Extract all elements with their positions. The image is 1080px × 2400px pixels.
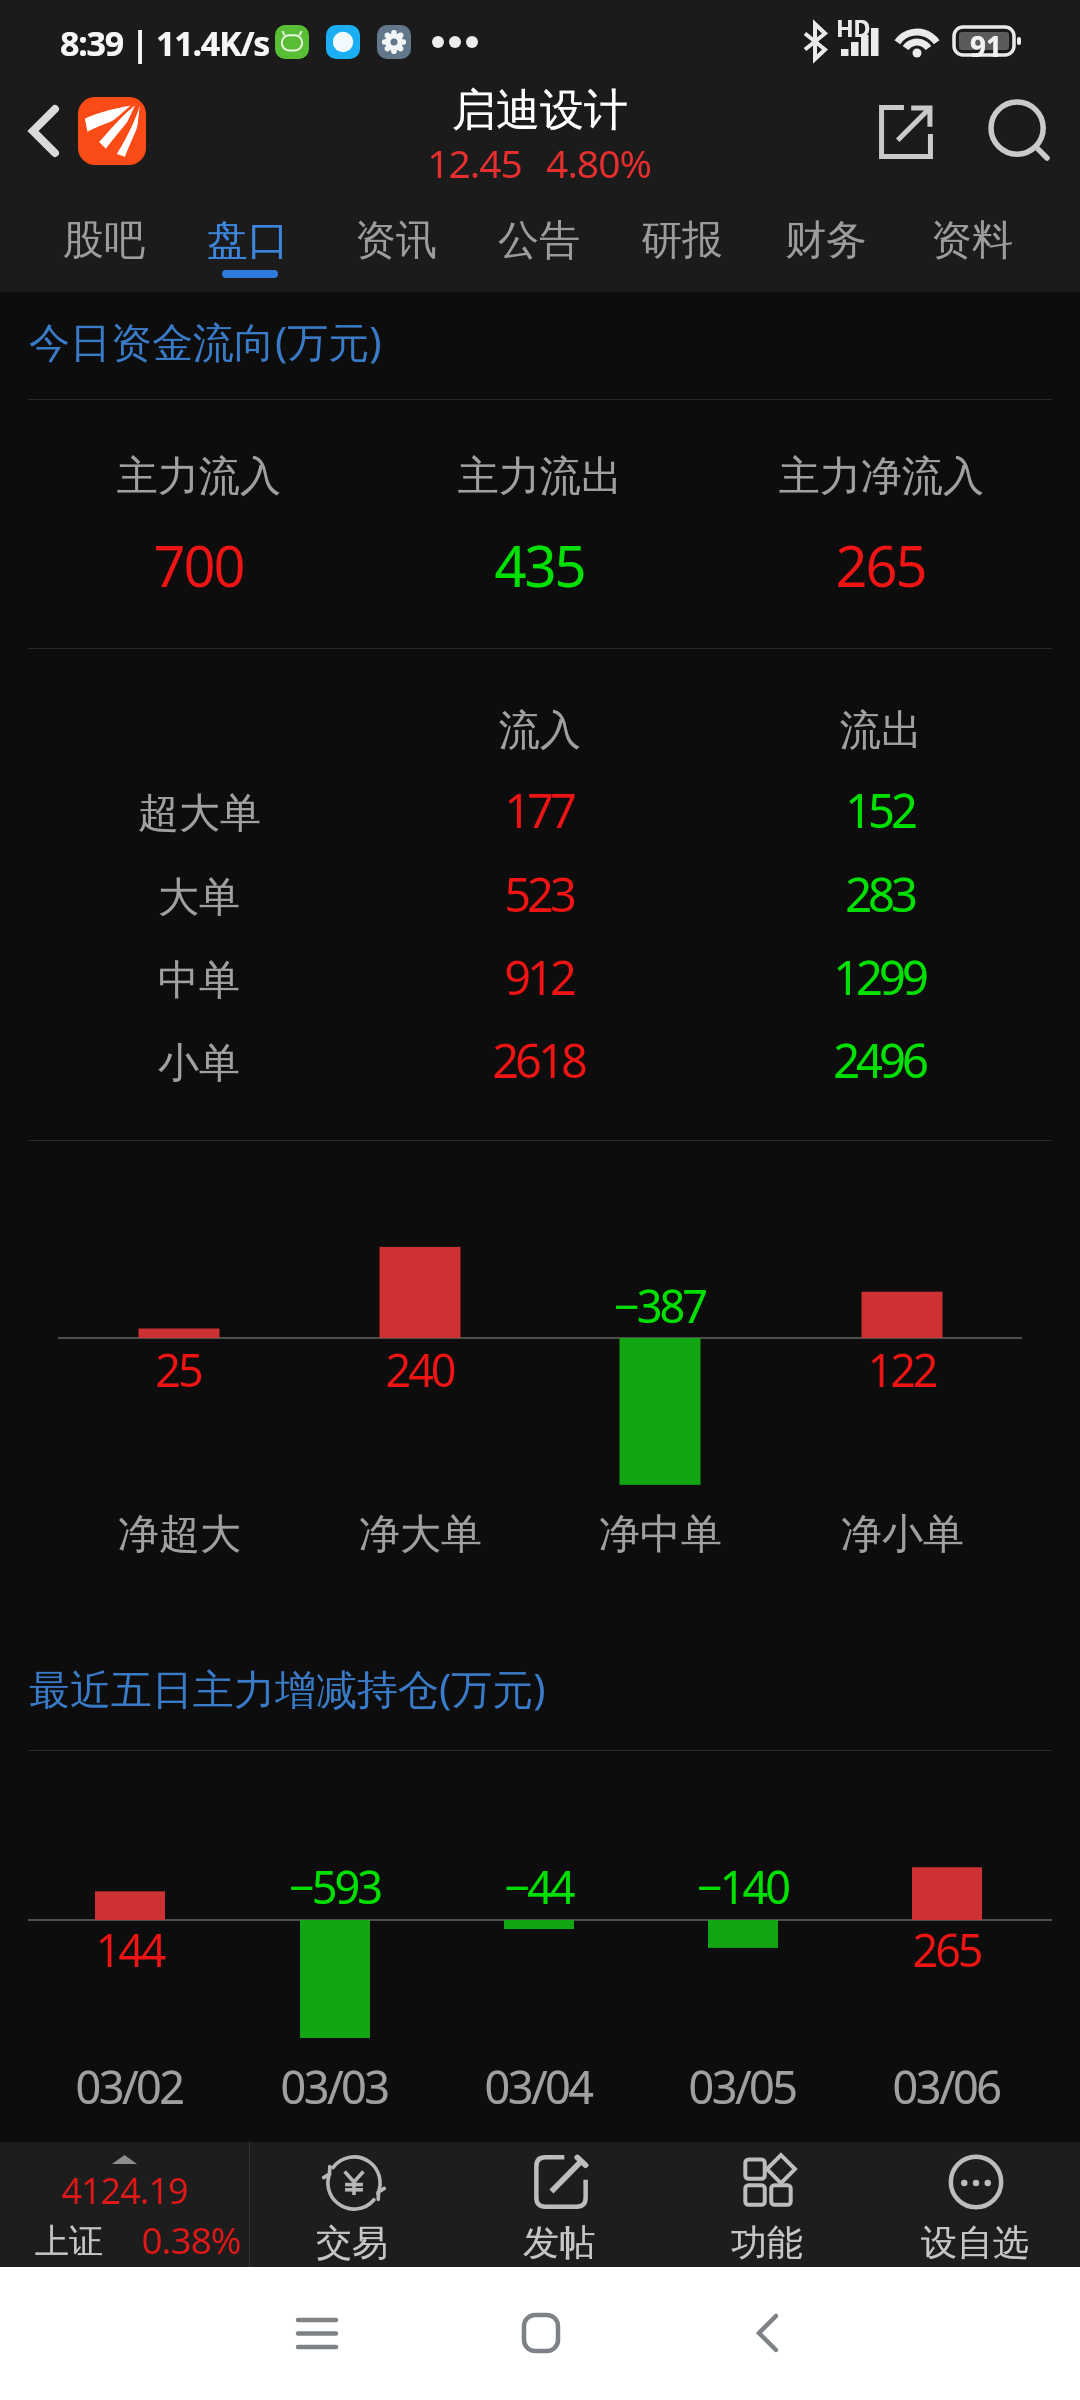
staticText: 股吧 <box>63 215 145 267</box>
button[interactable]: Search <box>970 81 1066 177</box>
button[interactable] <box>926 191 1080 292</box>
staticText: 流出 <box>840 705 922 757</box>
staticText: 研报 <box>641 215 723 267</box>
staticText: −593 <box>289 1856 380 1917</box>
staticText: 265 <box>835 527 926 603</box>
button[interactable] <box>310 191 464 292</box>
staticText: 122 <box>867 1339 936 1400</box>
staticText: 净大单 <box>359 1509 482 1561</box>
staticText: 财务 <box>785 215 867 267</box>
button[interactable] <box>0 2142 249 2268</box>
staticText: 资料 <box>931 215 1013 267</box>
staticText: 152 <box>845 778 914 842</box>
staticText: 资讯 <box>355 215 437 267</box>
staticText: 最近五日主力增减持仓(万元) <box>29 1660 546 1716</box>
staticText: 4124.19 <box>61 2166 188 2215</box>
button[interactable]: Back <box>707 2273 827 2393</box>
staticText: 03/04 <box>484 2056 592 2117</box>
staticText: 912 <box>504 945 573 1009</box>
staticText: 启迪设计 <box>452 83 628 138</box>
staticText: 283 <box>845 862 914 926</box>
staticText: −44 <box>504 1856 573 1917</box>
staticText: 超大单 <box>138 788 261 840</box>
staticText: 700 <box>153 527 244 603</box>
staticText: 主力净流入 <box>779 451 984 503</box>
staticText: 发帖 <box>523 2220 595 2265</box>
staticText: 91 <box>970 27 1003 65</box>
staticText: 功能 <box>731 2220 803 2265</box>
staticText: 2618 <box>492 1028 584 1092</box>
staticText: 03/05 <box>688 2056 796 2117</box>
staticText: 设自选 <box>921 2220 1029 2265</box>
staticText: 净中单 <box>599 1509 722 1561</box>
staticText: 主力流出 <box>458 451 622 503</box>
button[interactable] <box>0 191 155 292</box>
button[interactable] <box>772 191 926 292</box>
staticText: 8:39 | 11.4K/s <box>60 20 270 66</box>
button[interactable] <box>664 2142 872 2268</box>
staticText: 240 <box>385 1339 454 1400</box>
button[interactable] <box>872 2142 1080 2268</box>
staticText: 144 <box>95 1919 164 1980</box>
staticText: 今日资金流向(万元) <box>29 313 382 369</box>
staticText: 12.45 <box>427 136 522 189</box>
staticText: 2496 <box>833 1028 925 1092</box>
button[interactable] <box>155 191 310 292</box>
staticText: 4.80% <box>546 136 651 189</box>
staticText: 03/06 <box>892 2056 1000 2117</box>
staticText: 交易 <box>316 2220 388 2265</box>
button[interactable]: Back <box>0 83 78 191</box>
staticText: HD <box>836 12 871 43</box>
button[interactable] <box>618 191 772 292</box>
staticText: 公告 <box>498 215 580 267</box>
staticText: 265 <box>912 1919 981 1980</box>
staticText: 0.38% <box>141 2214 241 2264</box>
staticText: 上证 <box>35 2220 103 2263</box>
staticText: 大单 <box>158 872 240 924</box>
button[interactable] <box>457 2142 664 2268</box>
staticText: −140 <box>697 1856 788 1917</box>
button[interactable]: Recent apps <box>257 2273 377 2393</box>
staticText: 净超大 <box>118 1509 241 1561</box>
staticText: 主力流入 <box>117 451 281 503</box>
button[interactable] <box>464 191 618 292</box>
staticText: 流入 <box>499 705 581 757</box>
staticText: 523 <box>504 862 573 926</box>
staticText: 25 <box>155 1339 201 1400</box>
button[interactable]: Home <box>481 2273 601 2393</box>
staticText: 435 <box>494 527 585 603</box>
staticText: 中单 <box>158 955 240 1007</box>
staticText: 177 <box>504 778 573 842</box>
button[interactable]: Share <box>858 84 954 180</box>
staticText: 03/02 <box>75 2056 183 2117</box>
button[interactable] <box>250 2142 457 2268</box>
staticText: 净小单 <box>841 1509 964 1561</box>
button[interactable]: East Money home <box>78 97 146 165</box>
staticText: 03/03 <box>280 2056 388 2117</box>
staticText: 盘口 <box>207 215 289 267</box>
staticText: −387 <box>614 1275 705 1336</box>
staticText: 小单 <box>158 1038 240 1090</box>
staticText: 1299 <box>833 945 925 1009</box>
